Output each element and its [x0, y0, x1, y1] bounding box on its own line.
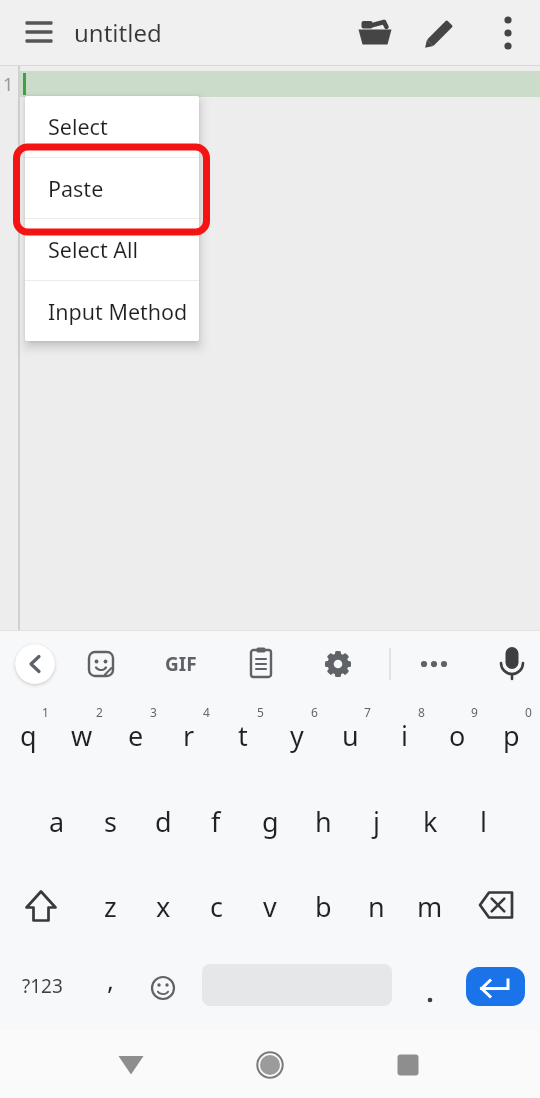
- staticText: Paste: [48, 174, 104, 203]
- staticText: Input Method: [48, 297, 188, 326]
- button[interactable]: h: [297, 790, 349, 852]
- staticText: o: [449, 717, 466, 754]
- button[interactable]: a: [31, 790, 83, 852]
- button[interactable]: Select: [25, 96, 199, 157]
- button[interactable]: Paste: [25, 158, 199, 218]
- staticText: s: [104, 803, 117, 840]
- staticText: 1: [42, 704, 49, 720]
- button[interactable]: t: [217, 704, 269, 766]
- staticText: q: [20, 717, 37, 754]
- staticText: p: [503, 717, 520, 754]
- staticText: 1: [3, 72, 14, 97]
- staticText: 3: [150, 704, 157, 720]
- button[interactable]: Select All: [25, 219, 199, 280]
- button[interactable]: r: [163, 704, 215, 766]
- staticText: 4: [203, 704, 210, 720]
- staticText: x: [156, 888, 171, 925]
- button[interactable]: [404, 961, 456, 1011]
- button[interactable]: v: [244, 875, 296, 937]
- button[interactable]: i: [378, 704, 430, 766]
- staticText: 0: [525, 704, 532, 720]
- button[interactable]: j: [350, 790, 402, 852]
- staticText: r: [183, 717, 195, 754]
- button[interactable]: [416, 9, 464, 57]
- staticText: k: [423, 803, 438, 840]
- staticText: l: [480, 803, 487, 840]
- staticText: 8: [418, 704, 425, 720]
- button[interactable]: [77, 640, 125, 688]
- staticText: y: [290, 717, 304, 754]
- button[interactable]: [15, 644, 55, 684]
- button[interactable]: e: [110, 704, 162, 766]
- button[interactable]: Input Method: [25, 281, 199, 341]
- staticText: j: [373, 803, 380, 840]
- button[interactable]: y: [271, 704, 323, 766]
- staticText: i: [401, 717, 408, 754]
- button[interactable]: o: [431, 704, 483, 766]
- staticText: 9: [471, 704, 478, 720]
- button[interactable]: [466, 967, 525, 1006]
- button[interactable]: [488, 639, 536, 687]
- button[interactable]: [11, 876, 71, 936]
- button[interactable]: p: [485, 704, 537, 766]
- staticText: b: [315, 888, 332, 925]
- button[interactable]: ,: [84, 948, 136, 1010]
- staticText: 6: [311, 704, 318, 720]
- staticText: g: [262, 803, 279, 840]
- button[interactable]: [19, 12, 59, 52]
- staticText: n: [368, 888, 385, 925]
- button[interactable]: d: [137, 790, 189, 852]
- button[interactable]: c: [190, 875, 242, 937]
- button[interactable]: l: [457, 790, 509, 852]
- button[interactable]: b: [297, 875, 349, 937]
- button[interactable]: [314, 640, 362, 688]
- staticText: e: [128, 717, 144, 754]
- button[interactable]: x: [137, 875, 189, 937]
- button[interactable]: [139, 964, 187, 1012]
- button[interactable]: g: [244, 790, 296, 852]
- staticText: d: [155, 803, 172, 840]
- staticText: ,: [107, 962, 114, 997]
- staticText: v: [263, 888, 277, 925]
- button[interactable]: [384, 1041, 432, 1089]
- button[interactable]: q: [2, 704, 54, 766]
- button[interactable]: k: [404, 790, 456, 852]
- button[interactable]: m: [404, 875, 456, 937]
- button[interactable]: [351, 9, 399, 57]
- button[interactable]: [107, 1041, 155, 1089]
- staticText: a: [49, 803, 65, 840]
- staticText: 2: [96, 704, 103, 720]
- staticText: Select All: [48, 235, 139, 264]
- staticText: h: [315, 803, 332, 840]
- staticText: Select: [48, 112, 108, 141]
- staticText: 7: [364, 704, 371, 720]
- staticText: GIF: [165, 651, 197, 677]
- button[interactable]: f: [190, 790, 242, 852]
- staticText: ?123: [22, 973, 63, 999]
- button[interactable]: ?123: [12, 961, 72, 1011]
- staticText: u: [342, 717, 359, 754]
- staticText: m: [417, 888, 443, 925]
- staticText: c: [210, 888, 223, 925]
- button[interactable]: [410, 640, 458, 688]
- button[interactable]: [246, 1041, 294, 1089]
- button[interactable]: [467, 875, 527, 935]
- button[interactable]: [237, 639, 285, 687]
- button[interactable]: s: [84, 790, 136, 852]
- staticText: w: [71, 717, 93, 754]
- button[interactable]: n: [350, 875, 402, 937]
- staticText: t: [238, 717, 248, 754]
- button[interactable]: w: [56, 704, 108, 766]
- staticText: untitled: [74, 16, 162, 49]
- staticText: 5: [257, 704, 264, 720]
- button[interactable]: u: [324, 704, 376, 766]
- button[interactable]: [484, 9, 532, 57]
- button[interactable]: GIF: [151, 644, 211, 684]
- button[interactable]: z: [84, 875, 136, 937]
- staticText: z: [104, 888, 117, 925]
- staticText: f: [211, 803, 221, 840]
